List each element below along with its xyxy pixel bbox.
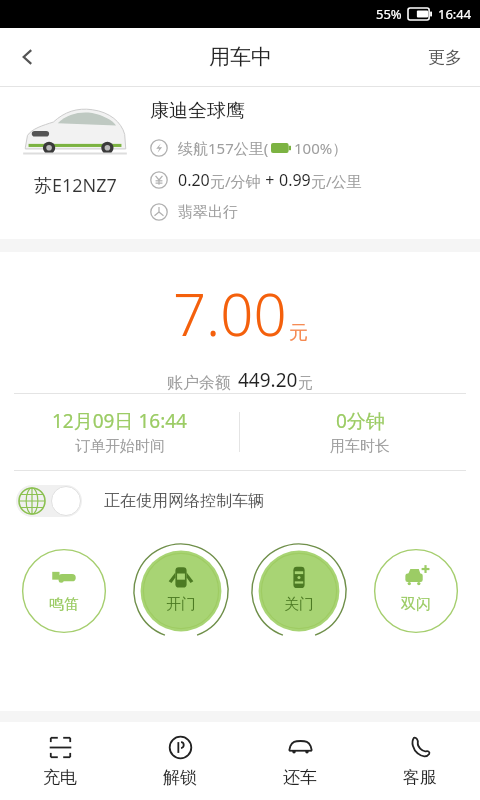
staticText: 0.20 [178,169,210,191]
staticText: 12月09日 16:44 [52,408,187,434]
staticText: 449.20 [238,367,298,393]
staticText: 0.99 [279,169,311,191]
staticText: 双闪 [401,595,431,614]
staticText: + [261,169,279,191]
staticText: 元/分钟 [210,171,261,191]
staticText: 元 [298,374,313,393]
staticText: 苏E12NZ7 [34,173,117,198]
staticText: 关门 [284,595,314,614]
staticText: 充电 [43,767,77,788]
button[interactable]: 解锁 [120,722,240,800]
staticText: 正在使用网络控制车辆 [104,491,264,511]
staticText: 更多 [428,47,462,68]
button[interactable]: Back [0,29,56,85]
staticText: 续航157公里( [178,138,269,158]
button[interactable]: 还车 [240,722,360,800]
button[interactable]: 更多 [410,33,480,82]
staticText: 0分钟 [336,408,385,434]
staticText: 还车 [283,767,317,788]
staticText: 元/公里 [311,171,362,191]
staticText: 100%） [294,138,348,158]
staticText: 55% [376,5,402,23]
button[interactable]: 鸣笛 [16,543,112,639]
staticText: 7.00 [173,274,287,353]
staticText: 用车时长 [330,437,390,456]
staticText: 16:44 [438,5,472,23]
button[interactable]: 开门 [133,543,229,639]
button[interactable]: Network control toggle [16,485,82,517]
button[interactable]: 关门 [251,543,347,639]
staticText: 订单开始时间 [75,437,165,456]
staticText: 元 [289,321,308,345]
button[interactable]: 双闪 [368,543,464,639]
staticText: 账户余额 [167,373,231,393]
staticText: 用车中 [209,44,272,70]
button[interactable]: 客服 [360,722,480,800]
staticText: 鸣笛 [49,595,79,614]
staticText: 开门 [166,595,196,614]
button[interactable]: 充电 [0,722,120,800]
staticText: 康迪全球鹰 [150,99,245,123]
staticText: 翡翠出行 [178,203,238,222]
staticText: 解锁 [163,767,197,788]
staticText: 客服 [403,767,437,788]
